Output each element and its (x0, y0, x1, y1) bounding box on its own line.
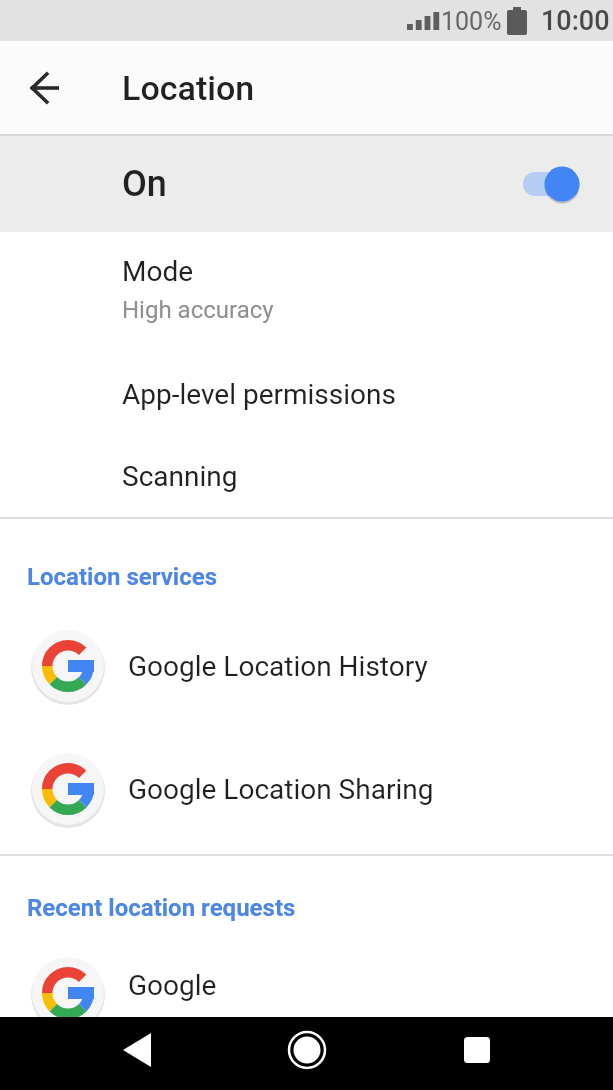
staticText: 100% (441, 7, 502, 36)
button[interactable]: Mode (0, 234, 613, 344)
staticText: 10:00 (541, 5, 610, 37)
staticText: Scanning (122, 460, 238, 493)
staticText: High accuracy (122, 296, 274, 324)
staticText: App-level permissions (122, 378, 396, 411)
staticText: Location (122, 68, 255, 108)
button[interactable] (252, 1017, 362, 1090)
staticText: Google Location History (128, 650, 428, 683)
button[interactable]: Google Location History (0, 610, 613, 722)
button[interactable]: Google Location Sharing (0, 733, 613, 845)
button[interactable]: On (0, 136, 613, 232)
button[interactable] (422, 1017, 532, 1090)
button[interactable]: App-level permissions (0, 353, 613, 435)
staticText: Mode (122, 255, 194, 288)
staticText: Location services (27, 563, 218, 591)
button[interactable] (82, 1017, 192, 1090)
button[interactable]: Google (0, 929, 613, 1041)
staticText: On (122, 163, 167, 205)
staticText: Recent location requests (27, 894, 296, 922)
button[interactable] (24, 66, 68, 110)
staticText: Google (128, 969, 217, 1002)
staticText: Google Location Sharing (128, 773, 434, 806)
button[interactable]: Scanning (0, 435, 613, 517)
